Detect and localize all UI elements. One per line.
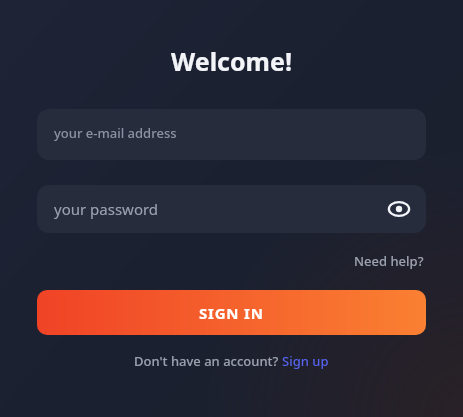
button[interactable]: your password — [37, 185, 426, 233]
button[interactable]: SIGN IN — [37, 290, 426, 335]
button[interactable]: your e-mail address — [37, 109, 426, 160]
staticText: your e-mail address — [54, 124, 177, 142]
staticText: Welcome! — [171, 44, 292, 78]
staticText: Don't have an account? — [134, 352, 282, 370]
staticText: Sign up — [282, 352, 329, 370]
staticText: SIGN IN — [199, 303, 264, 323]
button[interactable]: Show password — [384, 194, 414, 224]
staticText: Need help? — [354, 252, 424, 270]
staticText: your password — [54, 199, 159, 219]
button[interactable]: Need help? — [352, 250, 426, 272]
button[interactable]: Sign up — [282, 352, 329, 370]
